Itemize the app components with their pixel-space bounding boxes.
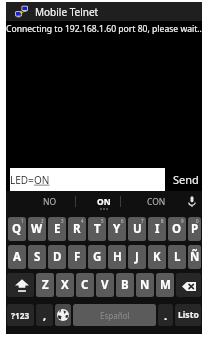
staticText: 1 xyxy=(21,218,24,224)
staticText: ON xyxy=(34,173,50,187)
button[interactable]: K xyxy=(148,245,166,269)
staticText: . xyxy=(164,308,168,323)
staticText: 2 xyxy=(41,218,44,224)
staticText: T xyxy=(94,221,101,237)
staticText: L xyxy=(174,249,181,265)
staticText: Ñ xyxy=(190,249,200,265)
button[interactable]: , xyxy=(36,304,53,326)
button[interactable]: Backspace xyxy=(176,273,201,297)
staticText: LED= xyxy=(10,173,34,187)
staticText: M xyxy=(160,277,171,293)
button[interactable]: C xyxy=(76,273,94,297)
button[interactable]: CON xyxy=(121,191,181,212)
button[interactable]: F xyxy=(68,245,86,269)
staticText: Q xyxy=(12,221,22,237)
staticText: Español xyxy=(100,310,130,321)
staticText: , xyxy=(43,308,47,323)
button[interactable]: LED= xyxy=(10,168,165,191)
staticText: V xyxy=(101,277,109,293)
button[interactable]: Ñ xyxy=(188,245,201,269)
staticText: NO xyxy=(43,196,57,208)
staticText: E xyxy=(54,221,61,237)
staticText: W xyxy=(31,221,43,237)
staticText: 4 xyxy=(81,218,84,224)
staticText: O xyxy=(172,221,182,237)
button[interactable]: L xyxy=(168,245,186,269)
staticText: CON xyxy=(147,196,166,208)
button[interactable]: Listo xyxy=(175,304,201,326)
staticText: Z xyxy=(42,277,49,293)
button[interactable]: S xyxy=(28,245,46,269)
button[interactable]: V xyxy=(96,273,114,297)
button[interactable]: NO xyxy=(6,191,75,212)
button[interactable]: ON xyxy=(76,191,120,212)
button[interactable]: Español xyxy=(73,304,156,326)
staticText: P xyxy=(191,221,199,237)
button[interactable]: . xyxy=(158,304,173,326)
staticText: 5 xyxy=(101,218,104,224)
button[interactable]: Voice input xyxy=(181,191,202,212)
staticText: F xyxy=(74,249,81,265)
staticText: X xyxy=(61,277,69,293)
staticText: ON xyxy=(97,196,111,208)
button[interactable]: Y xyxy=(108,217,126,241)
button[interactable]: W xyxy=(28,217,46,241)
button[interactable]: Z xyxy=(36,273,54,297)
staticText: U xyxy=(133,221,142,237)
staticText: ?123 xyxy=(11,310,30,321)
button[interactable]: ?123 xyxy=(7,304,34,326)
staticText: Connecting to 192.168.1.60 port 80, plea… xyxy=(6,23,202,35)
staticText: G xyxy=(93,249,102,265)
button[interactable]: I xyxy=(148,217,166,241)
button[interactable]: O xyxy=(168,217,186,241)
button[interactable]: X xyxy=(56,273,74,297)
button[interactable]: M xyxy=(156,273,174,297)
button[interactable]: R xyxy=(68,217,86,241)
staticText: 0 xyxy=(196,218,199,224)
staticText: S xyxy=(34,249,41,265)
button[interactable]: Send xyxy=(165,168,202,191)
staticText: 9 xyxy=(181,218,184,224)
staticText: H xyxy=(113,249,122,265)
staticText: K xyxy=(153,249,161,265)
staticText: D xyxy=(53,249,62,265)
button[interactable]: G xyxy=(88,245,106,269)
staticText: I xyxy=(155,221,160,237)
button[interactable]: Change keyboard language xyxy=(55,304,71,326)
staticText: R xyxy=(73,221,81,237)
staticText: C xyxy=(81,277,89,293)
staticText: Mobile Telnet xyxy=(35,5,99,19)
button[interactable]: H xyxy=(108,245,126,269)
button[interactable]: A xyxy=(8,245,26,269)
button[interactable]: Q xyxy=(8,217,26,241)
staticText: J xyxy=(135,249,139,265)
staticText: N xyxy=(140,277,150,293)
button[interactable]: U xyxy=(128,217,146,241)
staticText: Y xyxy=(113,221,121,237)
button[interactable]: B xyxy=(116,273,134,297)
button[interactable]: P xyxy=(188,217,201,241)
button[interactable]: J xyxy=(128,245,146,269)
button[interactable]: Shift xyxy=(7,273,34,297)
staticText: Listo xyxy=(178,309,199,321)
staticText: 8 xyxy=(161,218,164,224)
staticText: 6 xyxy=(121,218,124,224)
staticText: B xyxy=(121,277,129,293)
button[interactable]: N xyxy=(136,273,154,297)
staticText: Send xyxy=(173,172,199,187)
button[interactable]: T xyxy=(88,217,106,241)
staticText: A xyxy=(13,249,21,265)
staticText: 7 xyxy=(141,218,144,224)
button[interactable]: E xyxy=(48,217,66,241)
button[interactable]: D xyxy=(48,245,66,269)
staticText: 3 xyxy=(61,218,64,224)
